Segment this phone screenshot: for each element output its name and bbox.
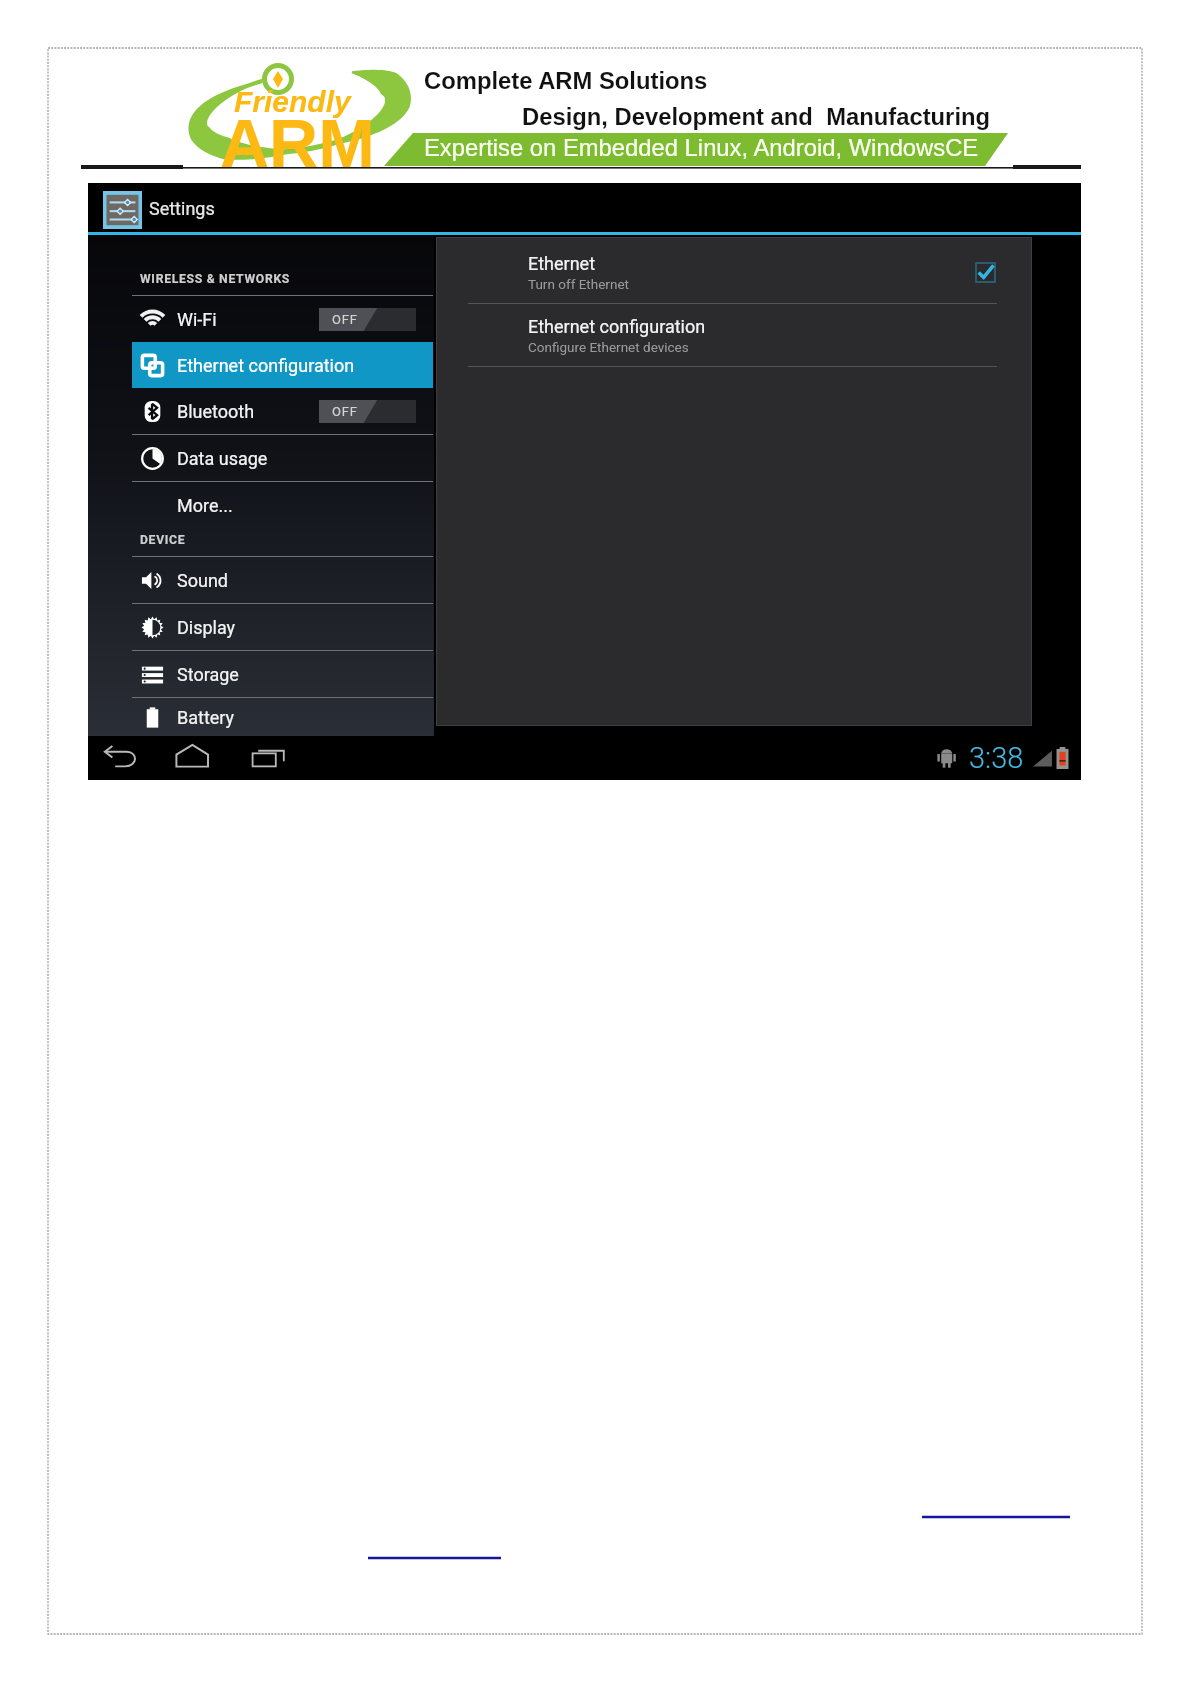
staticText: Wi-Fi	[177, 309, 217, 330]
button[interactable]: Data usage	[88, 435, 434, 481]
button[interactable]: More...	[88, 482, 434, 528]
staticText: Settings	[149, 198, 215, 219]
button[interactable]: Ethernet	[468, 241, 997, 303]
button[interactable]: Back	[102, 744, 142, 770]
button[interactable]: Ethernet configuration	[132, 342, 433, 388]
staticText: Ethernet configuration	[528, 316, 706, 337]
staticText: Display	[177, 617, 236, 638]
button[interactable]: Ethernet on	[976, 263, 995, 282]
button[interactable]: Home	[174, 742, 214, 770]
staticText: Complete ARM Solutions	[424, 67, 708, 94]
button[interactable]: Ethernet configuration	[468, 304, 997, 366]
staticText: Ethernet	[528, 253, 596, 274]
staticText: WIRELESS & NETWORKS	[140, 272, 291, 286]
staticText: Sound	[177, 570, 228, 591]
staticText: Configure Ethernet devices	[528, 339, 689, 355]
button[interactable]: Storage	[88, 651, 434, 697]
staticText: OFF	[332, 404, 358, 419]
staticText: Turn off Ethernet	[528, 276, 629, 292]
staticText: Battery	[177, 707, 235, 728]
staticText: OFF	[332, 312, 358, 327]
button[interactable]: Wi-Fi	[88, 296, 434, 342]
button[interactable]: 3:38	[937, 741, 1069, 775]
staticText: ARM	[220, 105, 375, 181]
button[interactable]: Sound	[88, 557, 434, 603]
staticText: More...	[177, 495, 233, 516]
staticText: Friendly	[234, 85, 351, 119]
staticText: Ethernet configuration	[177, 355, 355, 376]
staticText: 3:38	[969, 741, 1024, 775]
staticText: Storage	[177, 664, 239, 685]
button[interactable]: Bluetooth	[88, 388, 434, 434]
button[interactable]: Recents	[251, 744, 291, 770]
button[interactable]: Settings	[88, 183, 1081, 232]
staticText: Expertise on Embedded Linux, Android, Wi…	[424, 134, 979, 161]
staticText: Data usage	[177, 448, 268, 469]
button[interactable]: Battery	[88, 698, 434, 736]
staticText: Design, Development and Manufacturing	[522, 103, 991, 130]
staticText: Bluetooth	[177, 401, 255, 422]
staticText: DEVICE	[140, 533, 186, 547]
button[interactable]: Display	[88, 604, 434, 650]
